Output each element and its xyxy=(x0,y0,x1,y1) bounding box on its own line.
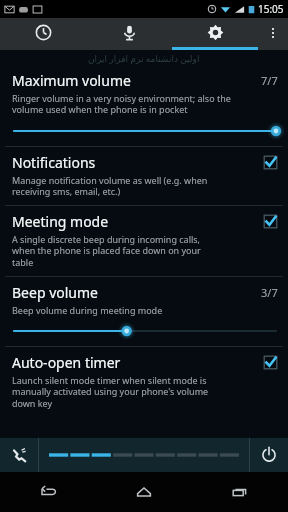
button[interactable]: Call volume xyxy=(0,438,38,472)
staticText: Notifications xyxy=(12,153,96,172)
button[interactable]: More options xyxy=(258,18,288,47)
button[interactable]: Maximum volume xyxy=(0,65,288,146)
staticText: 3/7 xyxy=(261,285,278,300)
button[interactable] xyxy=(12,123,278,139)
other: Enabled xyxy=(263,355,278,370)
button[interactable]: Recents xyxy=(192,472,288,512)
button[interactable]: Timer tab xyxy=(0,18,86,47)
other: Enabled xyxy=(263,155,278,170)
staticText: Launch silent mode timer when silent mod… xyxy=(12,374,209,410)
staticText: Manage notification volume as well (e.g.… xyxy=(12,174,208,198)
button[interactable] xyxy=(12,323,278,339)
button[interactable]: Meeting mode xyxy=(0,206,288,276)
button[interactable]: Notifications xyxy=(0,147,288,205)
button[interactable]: Recorder tab xyxy=(86,18,172,47)
button[interactable] xyxy=(39,438,249,472)
button[interactable]: Power xyxy=(250,438,288,472)
staticText: Ringer volume in a very noisy environmen… xyxy=(12,92,231,116)
button[interactable]: Beep volume xyxy=(0,277,288,346)
staticText: Auto-open timer xyxy=(12,353,121,372)
staticText: اولین دانشنامه نرم افزار ایران xyxy=(88,52,200,64)
staticText: Beep volume xyxy=(12,283,261,302)
staticText: Beep volume during meeting mode xyxy=(12,304,163,316)
staticText: A single discrete beep during incoming c… xyxy=(12,233,201,269)
button[interactable]: Settings tab xyxy=(172,18,258,47)
staticText: 7/7 xyxy=(261,73,278,88)
staticText: Meeting mode xyxy=(12,212,109,231)
staticText: 15:05 xyxy=(258,2,284,16)
staticText: Maximum volume xyxy=(12,71,261,90)
button[interactable]: Auto-open timer xyxy=(0,347,288,417)
button[interactable]: Back xyxy=(0,472,96,512)
button[interactable]: Home xyxy=(96,472,192,512)
other: Enabled xyxy=(263,214,278,229)
